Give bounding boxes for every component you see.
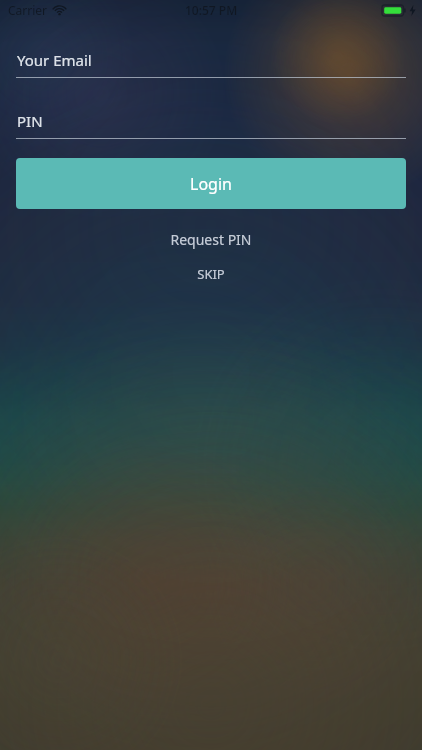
button[interactable]: SKIP <box>16 259 406 289</box>
button[interactable]: Your Email <box>16 50 406 78</box>
button[interactable]: Login <box>16 158 406 209</box>
staticText: PIN <box>17 111 43 131</box>
button[interactable]: PIN <box>16 111 406 139</box>
staticText: Your Email <box>17 50 92 70</box>
staticText: Login <box>190 173 232 195</box>
staticText: Carrier <box>8 2 48 18</box>
staticText: Request PIN <box>170 230 252 249</box>
staticText: 10:57 PM <box>185 2 238 18</box>
button[interactable]: Request PIN <box>16 223 406 255</box>
staticText: SKIP <box>197 265 225 283</box>
